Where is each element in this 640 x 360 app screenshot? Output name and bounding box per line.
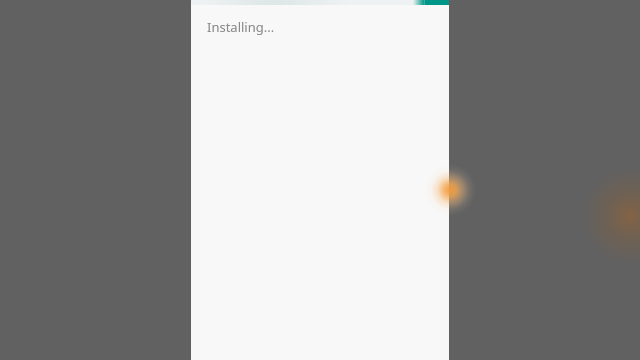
staticText: Installing...: [207, 18, 275, 36]
